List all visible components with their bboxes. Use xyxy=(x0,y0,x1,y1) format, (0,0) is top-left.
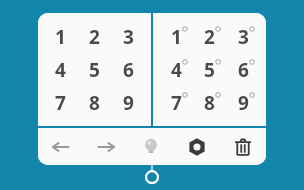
button[interactable]: 1 xyxy=(153,13,266,126)
button[interactable]: 6 xyxy=(226,53,260,86)
button[interactable]: 8 xyxy=(77,86,111,119)
button[interactable]: 6 xyxy=(111,53,145,86)
button[interactable]: Settings xyxy=(174,128,220,165)
button[interactable]: 2 xyxy=(77,20,111,53)
staticText: 8 xyxy=(204,90,215,116)
staticText: 9 xyxy=(238,90,249,116)
button[interactable]: Hint xyxy=(128,128,174,165)
staticText: 4 xyxy=(171,57,182,83)
staticText: 7 xyxy=(171,90,182,116)
button[interactable]: 5 xyxy=(77,53,111,86)
button[interactable]: 1 xyxy=(159,20,192,53)
staticText: 9 xyxy=(123,90,134,116)
button[interactable]: 9 xyxy=(111,86,145,119)
button[interactable]: 4 xyxy=(44,53,77,86)
button[interactable]: 1 xyxy=(38,13,151,126)
button[interactable]: 2 xyxy=(192,20,226,53)
button[interactable]: Forward xyxy=(83,128,128,165)
staticText: 6 xyxy=(123,57,134,83)
staticText: 1 xyxy=(171,24,182,50)
button[interactable]: 9 xyxy=(226,86,260,119)
staticText: 2 xyxy=(204,24,215,50)
button[interactable]: Back xyxy=(38,128,83,165)
button[interactable]: 7 xyxy=(44,86,77,119)
button[interactable]: 3 xyxy=(226,20,260,53)
button[interactable]: 1 xyxy=(44,20,77,53)
staticText: 4 xyxy=(55,57,66,83)
button[interactable]: 3 xyxy=(111,20,145,53)
staticText: 3 xyxy=(238,24,249,50)
button[interactable]: 4 xyxy=(159,53,192,86)
button[interactable]: 7 xyxy=(159,86,192,119)
button[interactable]: 8 xyxy=(192,86,226,119)
staticText: 6 xyxy=(238,57,249,83)
staticText: 5 xyxy=(89,57,100,83)
staticText: 2 xyxy=(89,24,100,50)
staticText: 8 xyxy=(89,90,100,116)
staticText: 5 xyxy=(204,57,215,83)
button[interactable]: 5 xyxy=(192,53,226,86)
button[interactable]: Delete xyxy=(220,128,266,165)
staticText: 1 xyxy=(55,24,66,50)
staticText: 7 xyxy=(55,90,66,116)
staticText: 3 xyxy=(123,24,134,50)
